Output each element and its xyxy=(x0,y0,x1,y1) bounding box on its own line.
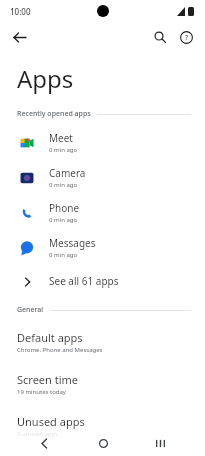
staticText: See all 61 apps xyxy=(49,274,119,288)
button[interactable]: Help xyxy=(173,24,199,50)
button[interactable]: Phone xyxy=(0,195,205,230)
staticText: Camera xyxy=(49,166,86,180)
staticText: 0 min ago xyxy=(49,251,78,259)
staticText: Default apps xyxy=(17,330,83,345)
staticText: Meet xyxy=(49,131,73,145)
staticText: 0 unused apps xyxy=(17,430,59,438)
button[interactable]: Default apps xyxy=(0,321,205,363)
staticText: ? xyxy=(185,33,189,43)
button[interactable]: Unused apps xyxy=(0,405,205,447)
staticText: 0 min ago xyxy=(49,146,78,154)
button[interactable]: See all 61 apps xyxy=(0,265,205,297)
button[interactable]: Screen time xyxy=(0,363,205,405)
staticText: Phone xyxy=(49,201,80,215)
staticText: Unused apps xyxy=(17,414,85,429)
button[interactable]: Messages xyxy=(0,230,205,265)
button[interactable]: Search xyxy=(147,24,173,50)
staticText: 0 min ago xyxy=(49,181,78,189)
staticText: 19 minutes today xyxy=(17,388,66,396)
button[interactable]: Camera xyxy=(0,160,205,195)
staticText: Apps xyxy=(17,62,74,95)
staticText: General xyxy=(17,305,44,315)
button[interactable]: Back xyxy=(33,431,57,455)
staticText: Chrome, Phone and Messages xyxy=(17,346,103,354)
staticText: 0 min ago xyxy=(49,216,78,224)
button[interactable]: Back xyxy=(6,24,32,50)
staticText: Recently opened apps xyxy=(17,109,91,119)
button[interactable]: Recent apps xyxy=(148,431,172,455)
button[interactable]: Home xyxy=(91,431,115,455)
button[interactable]: Meet xyxy=(0,125,205,160)
staticText: Messages xyxy=(49,236,96,250)
staticText: Screen time xyxy=(17,372,79,387)
button[interactable]: App battery usage xyxy=(0,447,205,456)
staticText: 10:00 xyxy=(10,6,31,17)
